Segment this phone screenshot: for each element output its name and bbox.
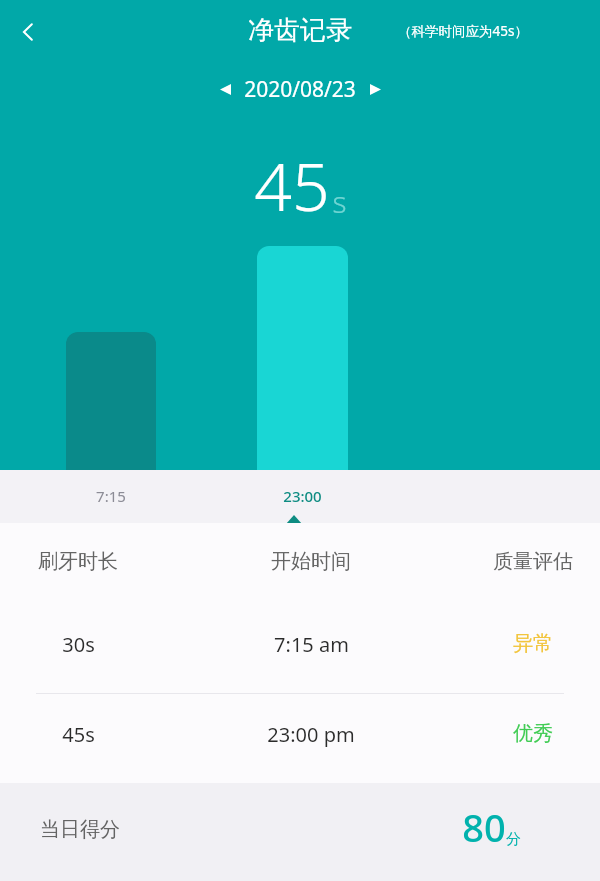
staticText: 净齿记录 — [248, 14, 352, 47]
staticText: 30s — [62, 631, 95, 658]
staticText: 异常 — [513, 631, 553, 656]
staticText: 开始时间 — [271, 549, 351, 574]
staticText: 23:00 — [283, 486, 322, 506]
staticText: 当日得分 — [40, 817, 120, 842]
button[interactable]: Previous day — [210, 74, 240, 104]
staticText: 80 — [462, 801, 506, 853]
staticText: 2020/08/23 — [244, 75, 356, 104]
staticText: 45s — [62, 721, 95, 748]
staticText: （科学时间应为45s） — [398, 22, 528, 40]
staticText: 23:00 pm — [267, 721, 355, 748]
staticText: 分 — [506, 830, 521, 849]
staticText: s — [332, 181, 347, 222]
button[interactable]: 当日得分 — [0, 783, 600, 881]
button[interactable]: Next day — [360, 74, 390, 104]
staticText: 45 — [254, 140, 330, 230]
button[interactable]: Back — [8, 12, 48, 52]
staticText: 刷牙时长 — [38, 549, 118, 574]
staticText: 优秀 — [513, 721, 553, 746]
staticText: 质量评估 — [493, 549, 573, 574]
staticText: 7:15 am — [274, 631, 349, 658]
staticText: 7:15 — [96, 486, 126, 506]
